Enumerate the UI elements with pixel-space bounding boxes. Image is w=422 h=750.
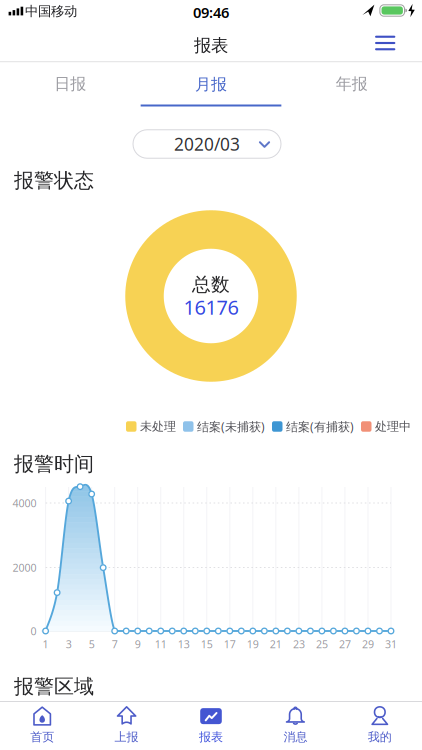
staticText: 31: [385, 637, 397, 651]
staticText: 15: [201, 637, 213, 651]
button[interactable]: 2020/03: [133, 130, 281, 158]
staticText: 未处理: [140, 419, 176, 434]
staticText: 7: [112, 637, 118, 651]
staticText: 1: [43, 637, 49, 651]
staticText: 上报: [115, 730, 139, 744]
staticText: 9: [135, 637, 141, 651]
staticText: 报警区域: [14, 674, 94, 699]
staticText: 27: [339, 637, 351, 651]
staticText: 中国移动: [25, 3, 77, 19]
staticText: 5: [89, 637, 95, 651]
staticText: 报警状态: [14, 168, 94, 193]
staticText: 21: [270, 637, 282, 651]
staticText: 17: [224, 637, 236, 651]
button[interactable]: 年报: [281, 62, 422, 106]
staticText: 日报: [54, 74, 86, 94]
staticText: 23: [293, 637, 305, 651]
staticText: 报表: [199, 730, 223, 744]
button[interactable]: Menu: [363, 25, 407, 61]
staticText: 我的: [368, 730, 392, 744]
staticText: 年报: [336, 74, 368, 94]
button[interactable]: 首页: [0, 702, 84, 748]
staticText: 16176: [183, 294, 238, 320]
button[interactable]: 消息: [253, 702, 337, 748]
staticText: 25: [316, 637, 328, 651]
staticText: 4000: [12, 496, 36, 510]
staticText: 报表: [194, 35, 228, 56]
staticText: 消息: [283, 730, 307, 744]
button[interactable]: 我的: [338, 702, 422, 748]
button[interactable]: 上报: [85, 702, 169, 748]
staticText: 29: [362, 637, 374, 651]
staticText: 11: [155, 637, 167, 651]
staticText: 月报: [195, 75, 227, 94]
staticText: 结案(有捕获): [286, 418, 354, 434]
staticText: 处理中: [375, 419, 411, 434]
staticText: 0: [30, 624, 36, 638]
staticText: 2000: [12, 560, 36, 575]
staticText: 2020/03: [174, 132, 240, 155]
staticText: 3: [66, 637, 72, 651]
staticText: 首页: [30, 730, 54, 744]
staticText: 19: [247, 637, 259, 651]
staticText: 报警时间: [14, 452, 94, 476]
button[interactable]: 月报: [141, 62, 281, 106]
button[interactable]: 日报: [0, 62, 141, 106]
staticText: 结案(未捕获): [197, 418, 265, 434]
staticText: 13: [178, 637, 190, 651]
staticText: 09:46: [193, 3, 229, 22]
button[interactable]: 报表: [169, 702, 253, 748]
staticText: 总数: [192, 273, 230, 296]
